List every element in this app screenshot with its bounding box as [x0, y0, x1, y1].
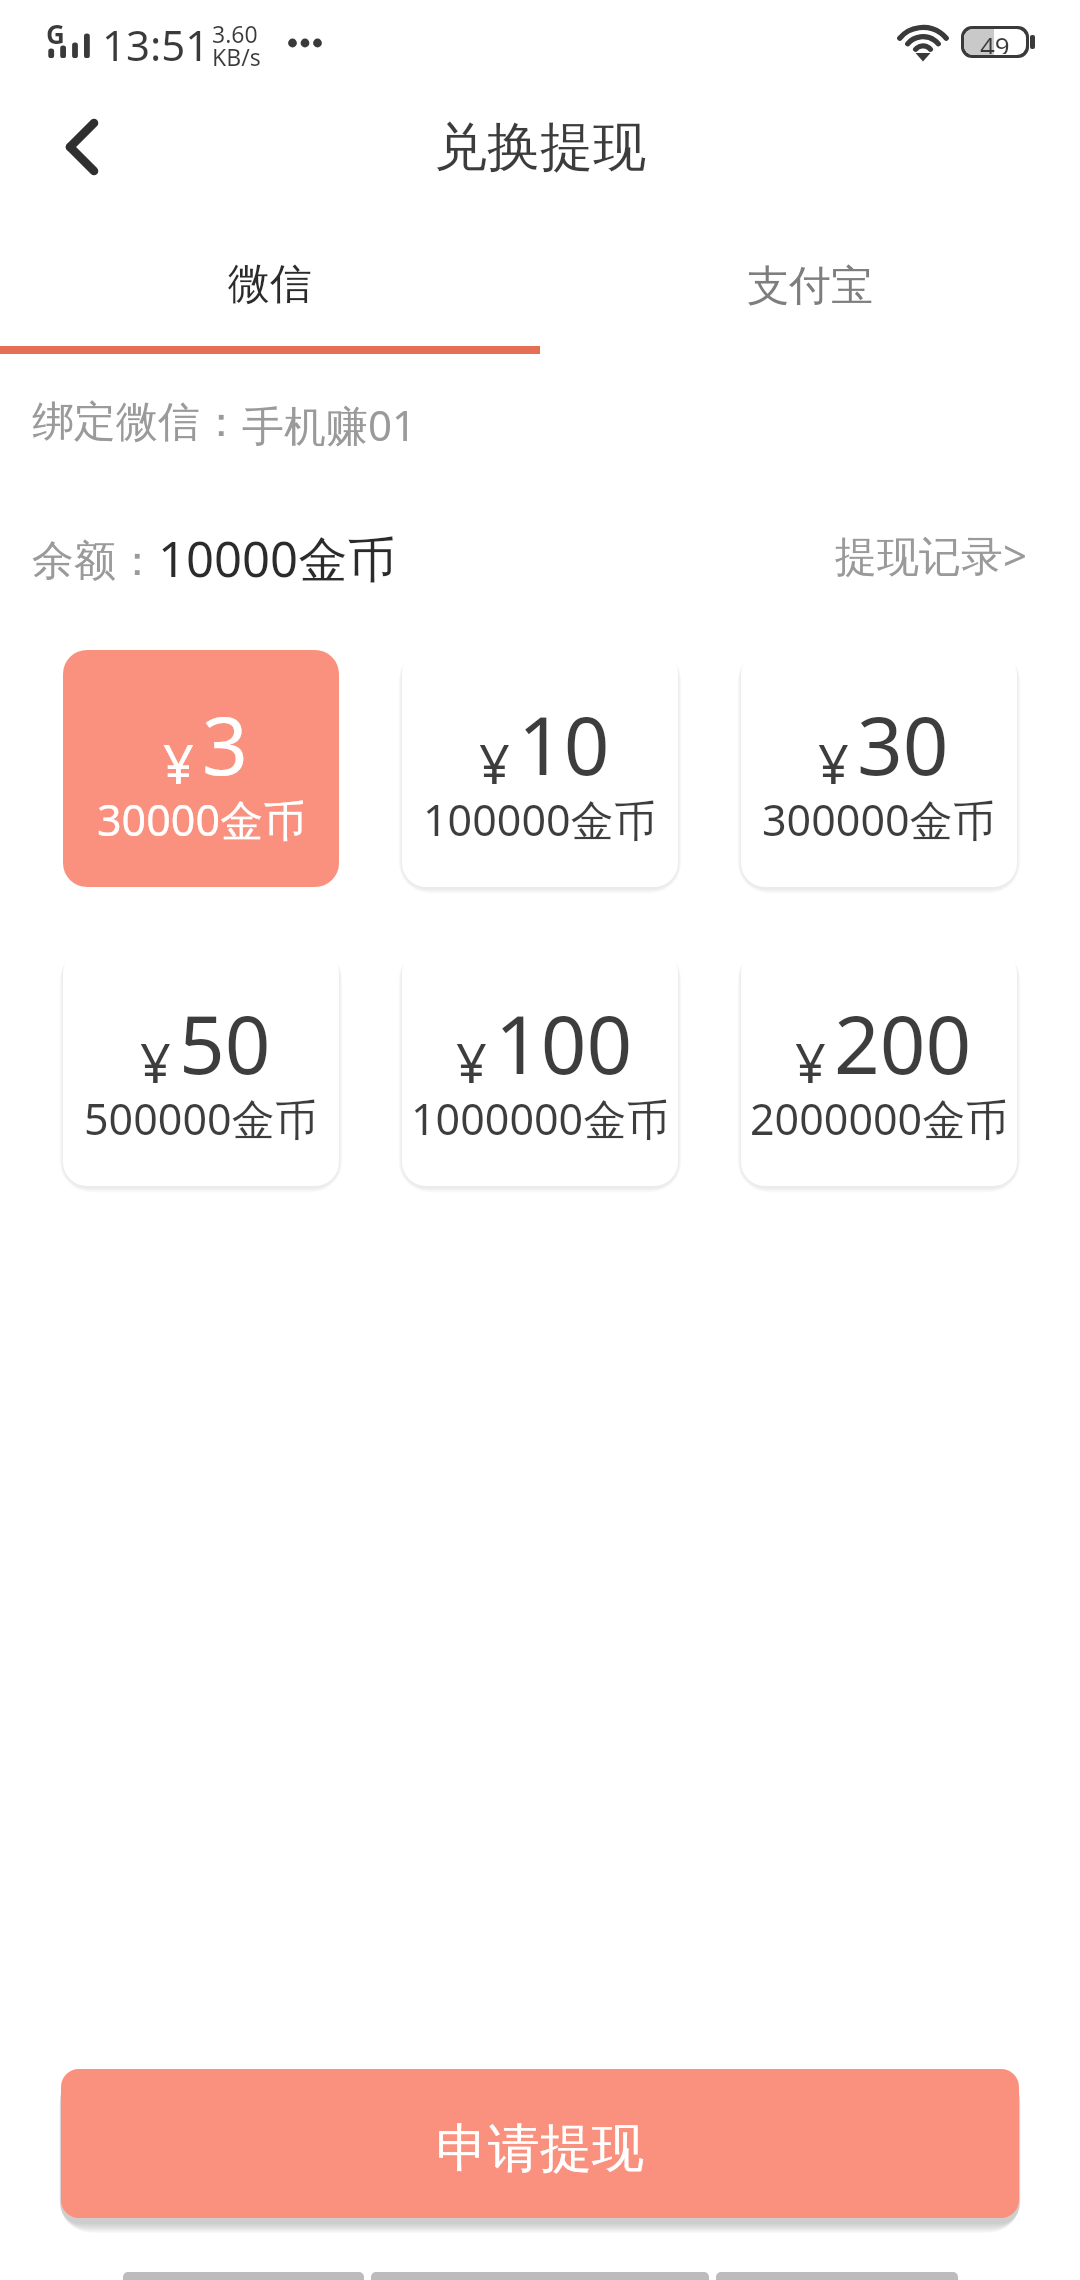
staticText: KB/s — [212, 41, 261, 72]
staticText: 100 — [495, 988, 633, 1097]
staticText: 余额： — [32, 535, 158, 588]
staticText: 支付宝 — [747, 260, 873, 313]
staticText: 10 — [518, 689, 610, 798]
staticText: 30000金币 — [97, 790, 306, 849]
staticText: 200 — [834, 988, 972, 1097]
staticText: 30 — [857, 689, 949, 798]
staticText: G — [46, 16, 65, 51]
staticText: ¥ — [795, 1025, 826, 1099]
staticText: 微信 — [228, 258, 312, 311]
staticText: ¥ — [163, 726, 194, 800]
staticText: 3 — [202, 689, 248, 798]
button[interactable]: ¥ — [741, 949, 1017, 1186]
staticText: 10000金币 — [158, 525, 397, 592]
button[interactable]: 申请提现 — [61, 2069, 1019, 2218]
staticText: 1000000金币 — [411, 1089, 670, 1148]
button[interactable]: ¥ — [402, 650, 678, 887]
staticText: 申请提现 — [436, 2116, 644, 2182]
staticText: ¥ — [140, 1025, 171, 1099]
button[interactable]: ¥ — [63, 949, 339, 1186]
staticText: 500000金币 — [84, 1089, 318, 1148]
button[interactable]: 提现记录> — [833, 526, 1030, 583]
staticText: 2000000金币 — [750, 1089, 1009, 1148]
staticText: 100000金币 — [423, 790, 657, 849]
staticText: 绑定微信： — [32, 396, 242, 449]
button[interactable]: ¥ — [402, 949, 678, 1186]
staticText: 300000金币 — [762, 790, 996, 849]
button[interactable]: 支付宝 — [540, 220, 1080, 354]
staticText: 49 — [980, 29, 1010, 54]
button[interactable]: ¥ — [741, 650, 1017, 887]
staticText: ¥ — [479, 726, 510, 800]
staticText: 提现记录> — [835, 526, 1028, 583]
staticText: ¥ — [818, 726, 849, 800]
staticText: 13:51 — [102, 16, 210, 73]
button[interactable]: ¥ — [63, 650, 339, 887]
staticText: 50 — [179, 988, 271, 1097]
staticText: ¥ — [456, 1025, 487, 1099]
staticText: 手机赚01 — [242, 396, 417, 453]
button[interactable]: 微信 — [0, 220, 540, 354]
button[interactable]: Back — [38, 105, 122, 189]
staticText: 兑换提现 — [434, 114, 646, 181]
staticText: 3.60 — [212, 18, 258, 49]
